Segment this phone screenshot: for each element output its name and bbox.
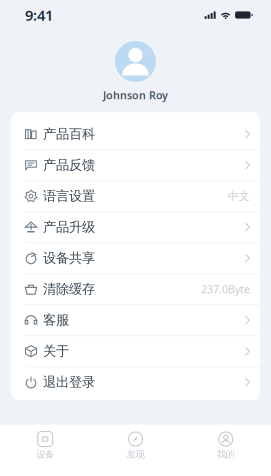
staticText: 退出登录 (43, 374, 95, 390)
button[interactable]: 语言设置 (11, 181, 260, 211)
button[interactable]: 退出登录 (11, 367, 260, 397)
button[interactable]: 设备共享 (11, 243, 260, 273)
staticText: 设备 (36, 448, 54, 460)
staticText: 客服 (43, 312, 69, 328)
button[interactable]: 产品升级 (11, 212, 260, 242)
staticText: 产品百科 (43, 126, 95, 142)
button[interactable]: 设备 (0, 424, 90, 476)
staticText: 关于 (43, 343, 69, 359)
staticText: 发现 (126, 448, 144, 460)
staticText: 语言设置 (43, 188, 95, 204)
staticText: 我的 (217, 448, 235, 460)
button[interactable]: 产品百科 (11, 119, 260, 149)
button[interactable]: 清除缓存 (11, 274, 260, 304)
staticText: 产品升级 (43, 219, 95, 235)
staticText: Johnson Roy (103, 88, 168, 102)
staticText: 清除缓存 (43, 281, 95, 297)
button[interactable]: 关于 (11, 336, 260, 366)
staticText: 237.0Byte (201, 282, 250, 296)
staticText: 9:41 (25, 5, 53, 25)
staticText: 设备共享 (43, 250, 95, 266)
button[interactable]: 客服 (11, 305, 260, 335)
button[interactable]: 我的 (181, 424, 271, 476)
button[interactable]: 发现 (90, 424, 181, 476)
staticText: 中文 (228, 190, 250, 203)
staticText: 产品反馈 (43, 157, 95, 173)
button[interactable]: 产品反馈 (11, 150, 260, 180)
